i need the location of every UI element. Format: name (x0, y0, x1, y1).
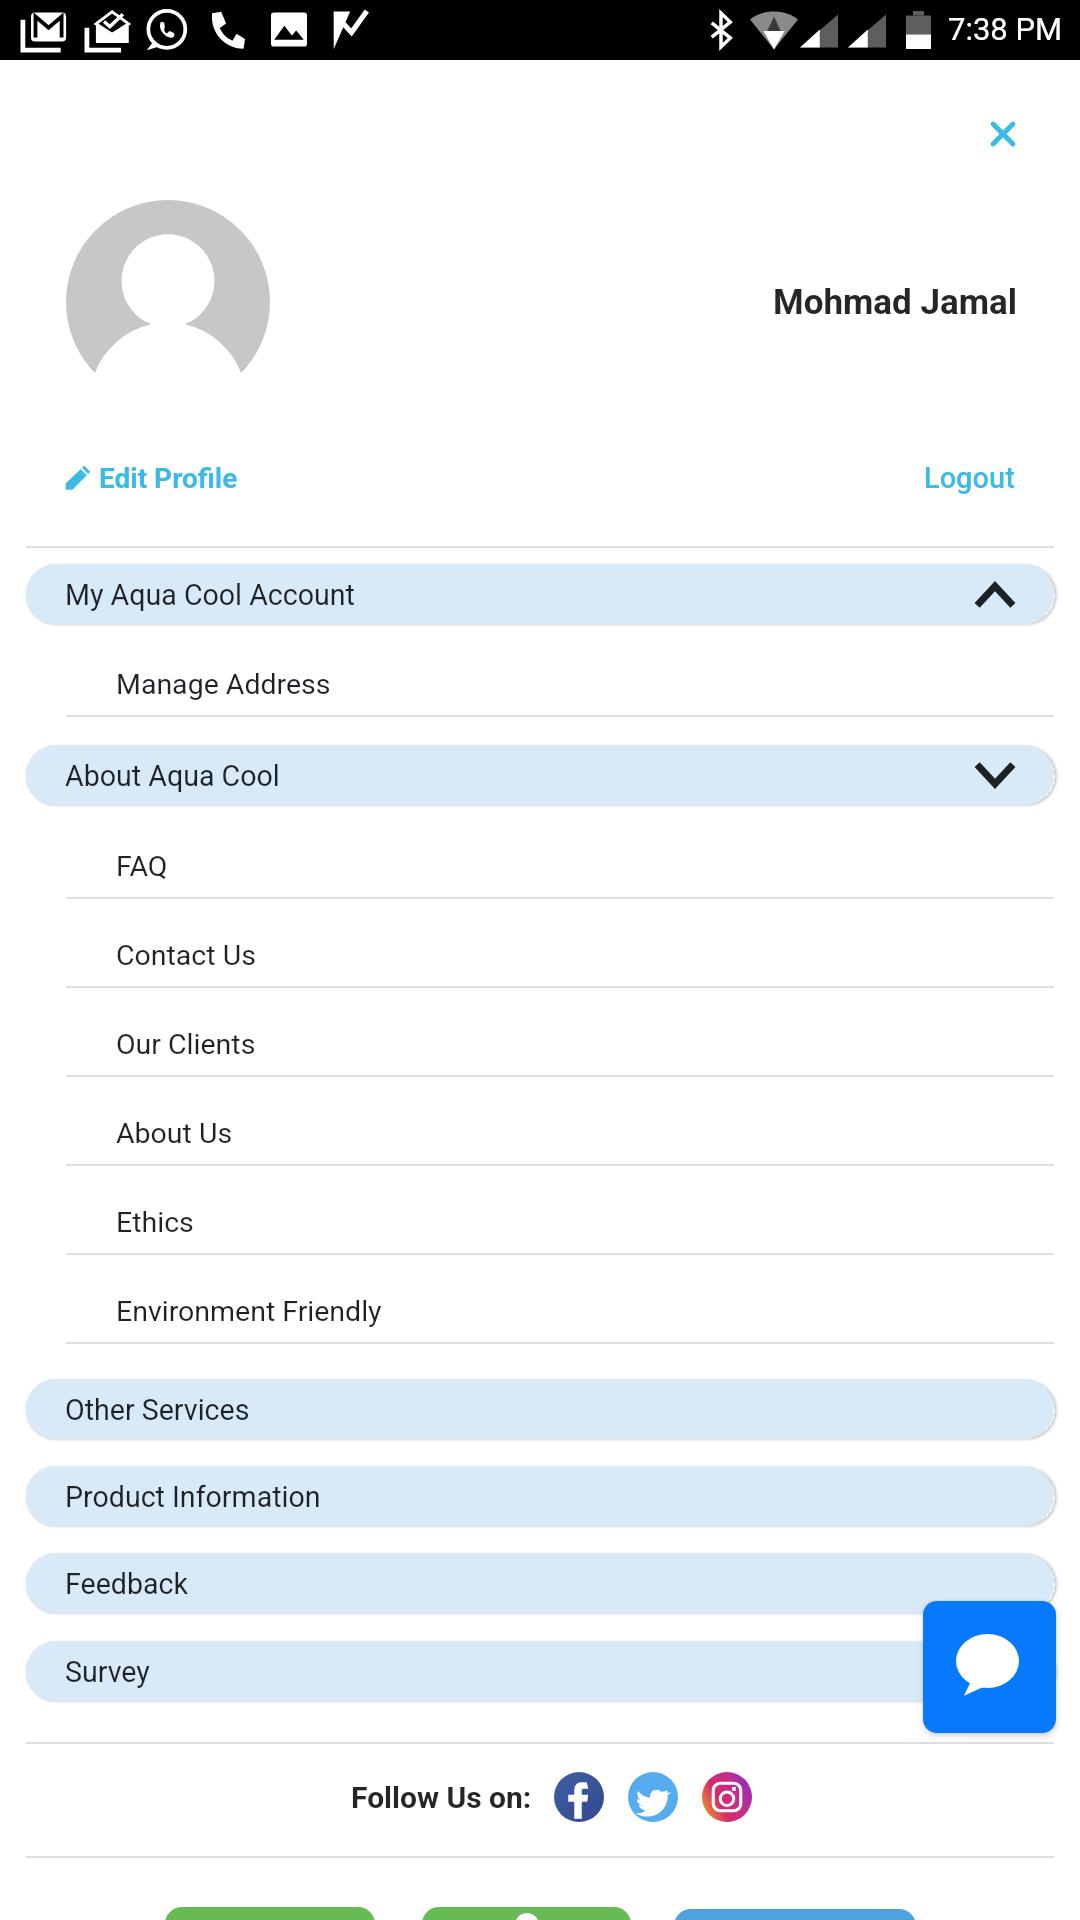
staticText: Other Services (65, 1393, 250, 1427)
staticText: Edit Profile (99, 462, 238, 495)
button[interactable]: About Aqua Cool (26, 745, 1054, 805)
button[interactable]: WhatsApp (422, 1907, 631, 1920)
button[interactable]: Environment Friendly (0, 1255, 1080, 1344)
button[interactable]: Chat (923, 1601, 1056, 1733)
button[interactable]: Manage Address (0, 628, 1080, 717)
button[interactable]: Call (165, 1907, 375, 1920)
button[interactable]: Facebook (554, 1772, 604, 1822)
staticText: Contact Us (116, 939, 256, 972)
button[interactable]: Our Clients (0, 988, 1080, 1077)
button[interactable]: Edit Profile (64, 452, 238, 504)
staticText: 7:38 PM (948, 11, 1063, 47)
button[interactable]: Other Services (26, 1379, 1054, 1439)
staticText: Follow Us on: (351, 1780, 532, 1815)
staticText: Logout (924, 461, 1015, 495)
staticText: Product Information (65, 1480, 321, 1514)
button[interactable]: Logout (924, 452, 1015, 504)
button[interactable]: Share (674, 1909, 916, 1920)
staticText: Environment Friendly (116, 1295, 382, 1328)
button[interactable]: Instagram (702, 1772, 752, 1822)
button[interactable]: Feedback (26, 1553, 1054, 1613)
button[interactable]: Close (973, 104, 1033, 164)
staticText: Manage Address (116, 668, 331, 701)
staticText: My Aqua Cool Account (65, 578, 355, 612)
button[interactable]: Twitter (628, 1772, 678, 1822)
staticText: About Aqua Cool (65, 759, 280, 793)
staticText: Mohmad Jamal (773, 282, 1018, 323)
staticText: Our Clients (116, 1028, 256, 1061)
button[interactable]: Contact Us (0, 899, 1080, 988)
staticText: Feedback (65, 1567, 189, 1601)
button[interactable]: FAQ (0, 810, 1080, 899)
staticText: Ethics (116, 1206, 194, 1239)
staticText: Survey (65, 1655, 150, 1689)
button[interactable]: Survey (26, 1641, 1054, 1701)
button[interactable]: My Aqua Cool Account (26, 564, 1054, 624)
staticText: About Us (116, 1117, 233, 1150)
staticText: FAQ (116, 850, 168, 883)
button[interactable]: Product Information (26, 1466, 1054, 1526)
button[interactable]: Ethics (0, 1166, 1080, 1255)
button[interactable]: About Us (0, 1077, 1080, 1166)
